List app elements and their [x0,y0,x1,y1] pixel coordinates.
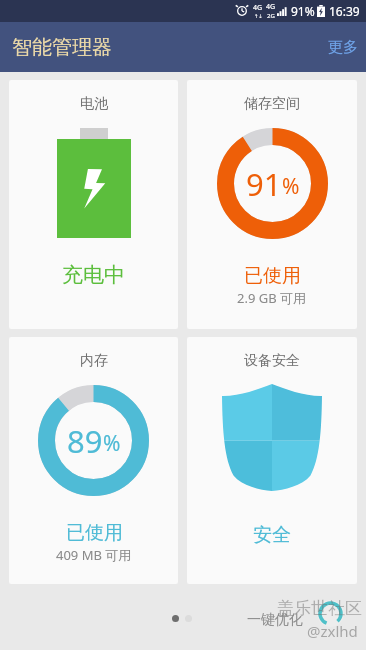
staticText: 已使用 [244,264,301,288]
staticText: ↑↓ [254,13,263,19]
staticText: 89 [67,420,103,462]
staticText: 91 [246,163,282,205]
staticText: 4G [266,2,276,12]
staticText: 智能管理器 [12,35,112,60]
button[interactable]: 内存 [9,337,178,584]
button[interactable]: 一键优化 [239,605,311,635]
staticText: % [103,429,121,458]
button[interactable]: 储存空间 [187,80,357,329]
staticText: 安全 [253,523,291,547]
button[interactable]: 更多 [312,26,366,69]
button[interactable]: 电池 [9,80,178,329]
staticText: 电池 [80,95,108,113]
staticText: 已使用 [66,521,123,545]
staticText: % [282,172,300,201]
staticText: 16:39 [329,3,360,19]
staticText: @zxlhd [307,621,358,641]
staticText: 一键优化 [247,611,303,629]
staticText: 409 MB 可用 [56,546,132,564]
staticText: 设备安全 [244,352,300,370]
staticText: 91% [291,3,315,19]
staticText: 2G [267,12,275,20]
staticText: 盖乐世社区 [277,598,362,619]
staticText: 更多 [328,38,358,57]
staticText: 内存 [80,352,108,370]
staticText: 储存空间 [244,95,300,113]
staticText: 充电中 [62,262,125,288]
button[interactable]: 设备安全 [187,337,357,584]
staticText: 4G [253,3,263,13]
staticText: 2.9 GB 可用 [237,289,307,307]
